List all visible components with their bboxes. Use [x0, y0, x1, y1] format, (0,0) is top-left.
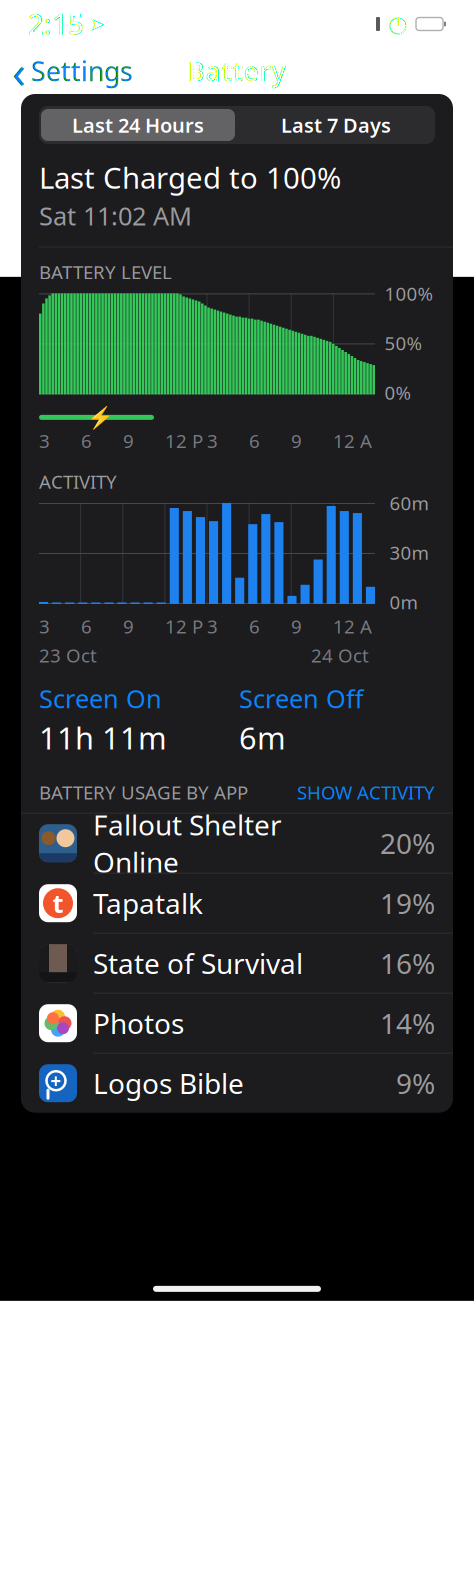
staticText: 20%: [380, 825, 435, 862]
staticText: 6: [249, 614, 260, 639]
staticText: 60m: [389, 491, 428, 515]
staticText: 9: [123, 428, 134, 453]
staticText: 24 Oct: [311, 643, 369, 668]
staticText: ➤: [89, 13, 106, 35]
staticText: Battery: [187, 53, 286, 89]
staticText: 100%: [384, 281, 433, 306]
staticText: BATTERY USAGE BY APP: [39, 780, 248, 805]
staticText: 19%: [380, 885, 435, 922]
staticText: 6: [249, 428, 260, 453]
staticText: ACTIVITY: [39, 469, 117, 494]
staticText: Last 7 Days: [281, 112, 391, 138]
staticText: 12 A: [333, 614, 372, 639]
staticText: Fallout Shelter Online: [93, 806, 282, 880]
staticText: 9: [123, 614, 134, 639]
staticText: 3: [39, 428, 50, 453]
staticText: +: [50, 1068, 61, 1093]
button[interactable]: t: [21, 874, 453, 934]
staticText: t: [52, 886, 63, 920]
button[interactable]: ‹: [0, 37, 133, 105]
staticText: 2:15: [28, 5, 84, 43]
staticText: 12 P: [165, 428, 203, 453]
staticText: 6: [81, 614, 92, 639]
staticText: Photos: [93, 1005, 184, 1042]
button[interactable]: Fallout Shelter Online: [21, 814, 453, 874]
staticText: Logos Bible: [93, 1065, 244, 1102]
button[interactable]: Last 7 Days: [237, 107, 435, 143]
staticText: Screen Off: [239, 681, 363, 715]
staticText: 6m: [239, 717, 286, 758]
staticText: 9: [291, 614, 302, 639]
staticText: 3: [39, 614, 50, 639]
staticText: Sat 11:02 AM: [39, 199, 192, 233]
staticText: ◔: [388, 11, 408, 37]
staticText: 11h 11m: [39, 717, 167, 758]
staticText: 16%: [380, 945, 435, 982]
staticText: Last Charged to 100%: [39, 158, 341, 197]
staticText: SHOW ACTIVITY: [297, 780, 435, 805]
staticText: 3: [207, 428, 218, 453]
staticText: Last 24 Hours: [72, 112, 204, 138]
staticText: 50%: [384, 330, 422, 355]
staticText: ‹: [12, 41, 26, 101]
staticText: Tapatalk: [93, 885, 203, 922]
staticText: 12 A: [333, 428, 372, 453]
button[interactable]: State of Survival: [21, 934, 453, 994]
staticText: 3: [207, 614, 218, 639]
staticText: State of Survival: [93, 945, 303, 982]
staticText: ⚡: [87, 405, 114, 430]
staticText: 30m: [389, 540, 428, 565]
staticText: 0%: [384, 380, 411, 405]
staticText: 12 P: [165, 614, 203, 639]
staticText: 9%: [396, 1065, 435, 1102]
staticText: BATTERY LEVEL: [39, 260, 172, 284]
button[interactable]: SHOW ACTIVITY: [297, 780, 435, 805]
staticText: 6: [81, 428, 92, 453]
staticText: 9: [291, 428, 302, 453]
button[interactable]: +: [21, 1054, 453, 1113]
button[interactable]: Last 24 Hours: [39, 107, 237, 143]
staticText: 0m: [389, 590, 417, 614]
staticText: Screen On: [39, 681, 162, 715]
button[interactable]: Photos: [21, 994, 453, 1054]
staticText: 23 Oct: [39, 643, 97, 668]
staticText: 14%: [380, 1005, 435, 1042]
staticText: Settings: [31, 53, 133, 89]
